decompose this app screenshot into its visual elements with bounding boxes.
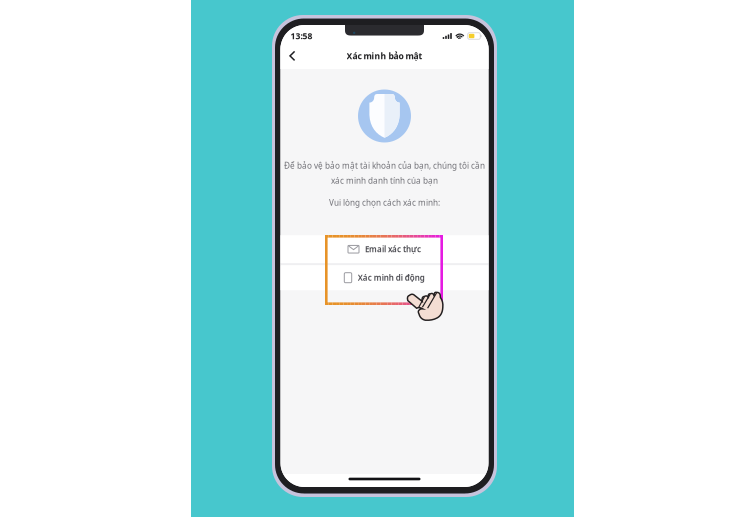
button[interactable]: Xác minh di động xyxy=(280,265,488,290)
staticText: Vui lòng chọn cách xác minh: xyxy=(329,197,440,208)
staticText: xác minh danh tính của bạn xyxy=(331,175,438,186)
button[interactable]: Email xác thực xyxy=(280,235,488,263)
staticText: Xác minh bảo mật xyxy=(346,50,422,62)
staticText: Để bảo vệ bảo mật tài khoản của bạn, chú… xyxy=(284,160,485,171)
staticText: Xác minh di động xyxy=(358,272,425,283)
button[interactable]: Back xyxy=(281,44,303,68)
staticText: 13:58 xyxy=(290,30,312,42)
staticText: Email xác thực xyxy=(365,244,421,255)
